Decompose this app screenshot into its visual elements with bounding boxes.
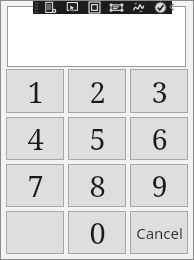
button[interactable]: 0 [68,211,126,254]
button[interactable]: 9 [130,164,188,207]
button[interactable]: Insert form field [39,0,61,14]
button[interactable]: 5 [68,117,126,160]
button[interactable]: 7 [6,164,64,207]
staticText: 4 [27,119,44,158]
button[interactable]: 2 [68,69,126,113]
button[interactable]: 6 [130,117,188,160]
button[interactable]: 4 [6,117,64,160]
button[interactable]: 3 [130,69,188,113]
staticText: Cancel [136,223,183,243]
staticText: 8 [89,166,106,205]
button[interactable] [7,6,186,67]
staticText: 0 [89,213,106,252]
button[interactable]: Cancel [130,211,188,254]
button[interactable]: Blank key [6,211,64,254]
button[interactable]: Edit fields [105,0,127,14]
button[interactable]: Signature [127,0,149,14]
staticText: 5 [89,119,106,158]
button[interactable]: Validate [149,0,171,14]
button[interactable]: 1 [6,69,64,113]
staticText: 7 [27,166,44,205]
staticText: 3 [151,72,168,111]
staticText: 2 [89,72,106,111]
staticText: 1 [27,72,44,111]
button[interactable]: 8 [68,164,126,207]
button[interactable]: Text box [83,0,105,14]
staticText: 9 [151,166,168,205]
staticText: 6 [151,119,168,158]
button[interactable]: Select pointer [61,0,83,14]
